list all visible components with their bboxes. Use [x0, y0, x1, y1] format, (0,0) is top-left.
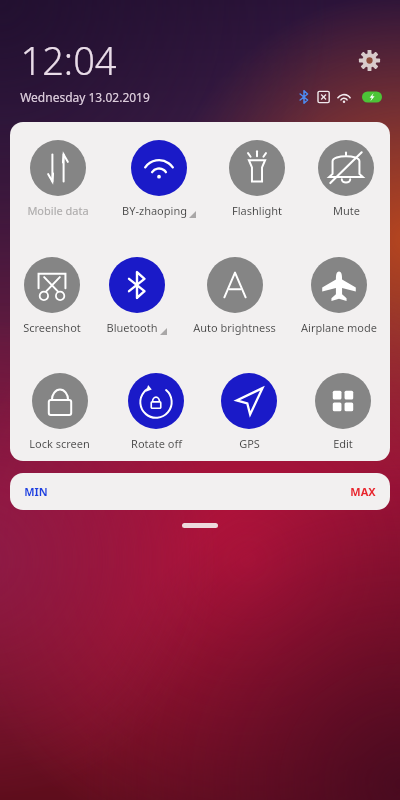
button[interactable]: Bluetooth [106, 256, 167, 335]
staticText: Mute [333, 203, 360, 218]
button[interactable]: GPS [221, 372, 277, 451]
staticText: Edit [333, 436, 353, 451]
staticText: Rotate off [131, 436, 182, 451]
button[interactable]: Mobile data [27, 139, 89, 218]
button[interactable]: Airplane mode [301, 256, 377, 335]
staticText: Bluetooth [106, 320, 158, 335]
staticText: Mobile data [27, 203, 89, 218]
staticText: Flashlight [232, 203, 282, 218]
staticText: GPS [239, 436, 260, 451]
staticText: Auto brightness [193, 320, 276, 335]
staticText: MIN [24, 484, 48, 499]
button[interactable]: Settings [354, 45, 384, 75]
button[interactable]: Flashlight [229, 139, 285, 218]
staticText: BY-zhaoping [122, 203, 187, 218]
button[interactable]: Collapse panel [182, 523, 218, 528]
staticText: Lock screen [29, 436, 90, 451]
button[interactable]: Mute [318, 139, 374, 218]
staticText: Wednesday 13.02.2019 [20, 89, 150, 105]
button[interactable]: Brightness slider [10, 473, 390, 510]
button[interactable]: Screenshot [23, 256, 81, 335]
button[interactable]: Rotate off [128, 372, 184, 451]
button[interactable]: Edit [315, 372, 371, 451]
button[interactable]: Lock screen [29, 372, 90, 451]
staticText: 12:04 [20, 34, 117, 86]
button[interactable]: Auto brightness [193, 256, 276, 335]
staticText: Screenshot [23, 320, 81, 335]
staticText: MAX [350, 484, 376, 499]
staticText: Airplane mode [301, 320, 377, 335]
button[interactable]: BY-zhaoping [122, 139, 196, 218]
